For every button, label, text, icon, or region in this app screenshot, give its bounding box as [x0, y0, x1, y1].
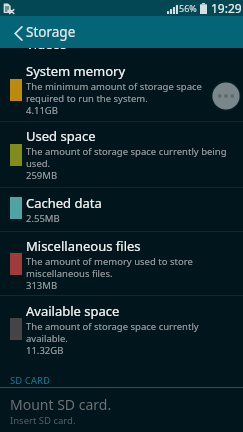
- button[interactable]: Available space: [0, 296, 243, 360]
- staticText: Videos: [26, 35, 67, 53]
- staticText: System memory: [26, 62, 126, 80]
- staticText: Available space: [26, 302, 120, 320]
- button[interactable]: More options: [211, 81, 241, 111]
- button[interactable]: System memory: [0, 49, 243, 122]
- button[interactable]: Cached data: [0, 188, 243, 232]
- staticText: The amount of storage space currently be…: [26, 145, 227, 182]
- staticText: 2.55MB: [26, 212, 60, 225]
- button[interactable]: Mount SD card.: [0, 388, 243, 427]
- staticText: 56%: [179, 2, 197, 14]
- button[interactable]: Miscellaneous files: [0, 232, 243, 296]
- staticText: The amount of memory used to store misce…: [26, 255, 193, 292]
- staticText: SD CARD: [10, 374, 50, 387]
- staticText: The amount of storage space currently av…: [26, 320, 199, 357]
- staticText: Miscellaneous files: [26, 237, 141, 255]
- button[interactable]: Navigate up: [0, 16, 243, 48]
- staticText: Storage: [26, 23, 76, 41]
- staticText: Mount SD card.: [10, 395, 112, 414]
- other: Navigate up: [5, 16, 31, 48]
- staticText: Insert SD card.: [10, 414, 76, 427]
- staticText: Used space: [26, 127, 96, 145]
- staticText: 19:29: [211, 0, 242, 16]
- staticText: Cached data: [26, 194, 102, 212]
- button[interactable]: Used space: [0, 122, 243, 188]
- staticText: The minimum amount of storage space requ…: [26, 80, 202, 117]
